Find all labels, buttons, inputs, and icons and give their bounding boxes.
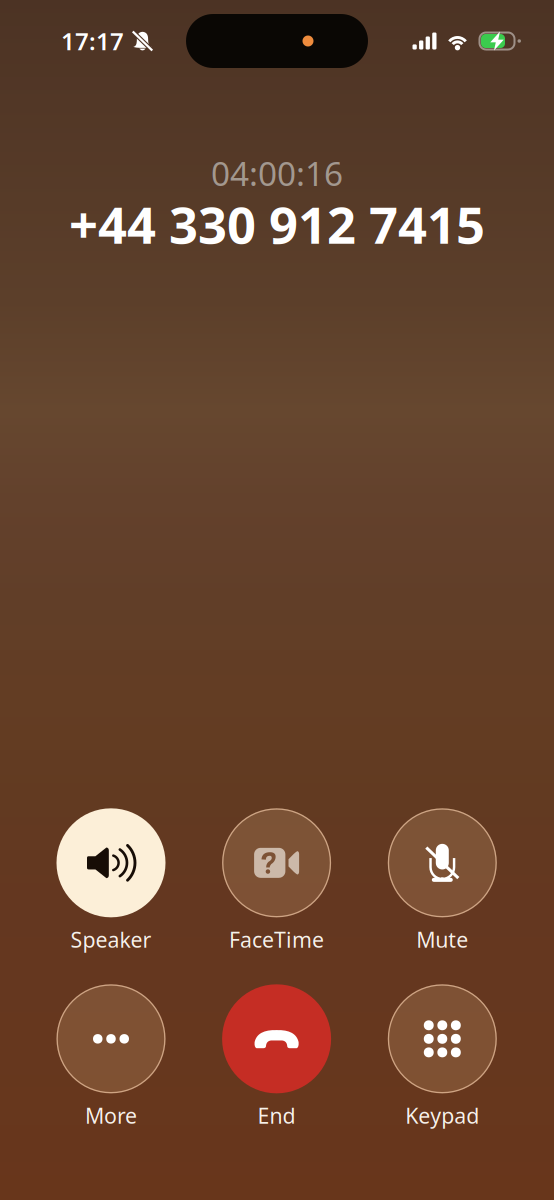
staticText: 17:17 [61,25,124,57]
button[interactable]: Keypad [362,984,522,1130]
staticText: End [258,1101,296,1130]
staticText: +44 330 912 7415 [69,190,485,258]
button[interactable]: Mute [362,808,522,954]
button[interactable]: Speaker [31,808,191,954]
staticText: 04:00:16 [211,151,343,195]
staticText: More [85,1101,137,1130]
staticText: FaceTime [229,925,324,954]
staticText: Speaker [70,925,151,954]
staticText: Keypad [405,1101,479,1130]
button[interactable]: End [197,984,357,1130]
button[interactable]: FaceTime [197,808,357,954]
staticText: Mute [416,925,468,954]
button[interactable]: More [31,984,191,1130]
